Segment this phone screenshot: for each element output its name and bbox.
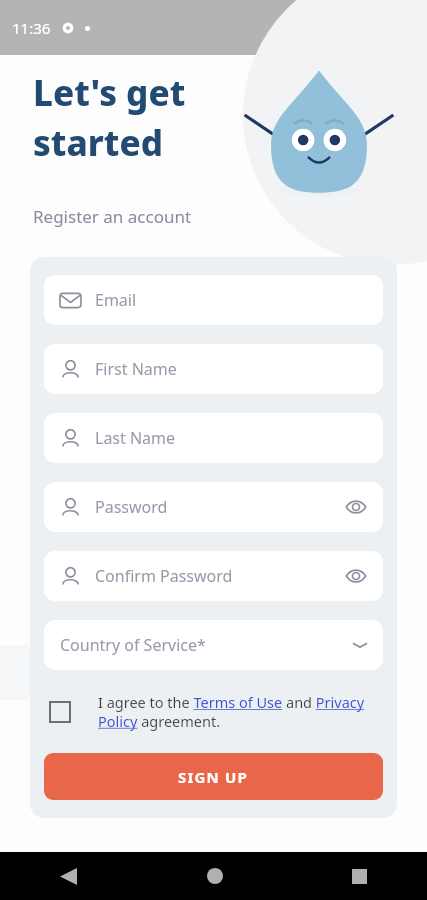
- staticText: Password: [95, 496, 345, 518]
- staticText: SIGN UP: [178, 767, 249, 787]
- staticText: Email: [95, 289, 367, 311]
- staticText: Register an account: [33, 205, 192, 228]
- button[interactable]: Country of Service*: [44, 620, 383, 670]
- staticText: First Name: [95, 358, 367, 380]
- other: Show password: [345, 496, 367, 518]
- other: Open dropdown: [353, 638, 367, 652]
- staticText: I agree to the Terms of Use and Privacy …: [98, 692, 383, 731]
- button[interactable]: First Name: [44, 344, 383, 394]
- button[interactable]: Back: [60, 868, 77, 885]
- staticText: Confirm Password: [95, 565, 345, 587]
- button[interactable]: Last Name: [44, 413, 383, 463]
- staticText: Let's get: [33, 69, 186, 117]
- other: Show password: [345, 565, 367, 587]
- button[interactable]: Confirm Password: [44, 551, 383, 601]
- button[interactable]: Password: [44, 482, 383, 532]
- button[interactable]: Agree to terms: [44, 692, 383, 731]
- staticText: Country of Service*: [60, 634, 353, 656]
- other: Agree to terms: [50, 702, 70, 722]
- button[interactable]: Home: [207, 868, 223, 884]
- staticText: started: [33, 119, 163, 167]
- staticText: 11:36: [12, 18, 51, 38]
- staticText: Last Name: [95, 427, 367, 449]
- button[interactable]: Email: [44, 275, 383, 325]
- button[interactable]: SIGN UP: [44, 753, 383, 800]
